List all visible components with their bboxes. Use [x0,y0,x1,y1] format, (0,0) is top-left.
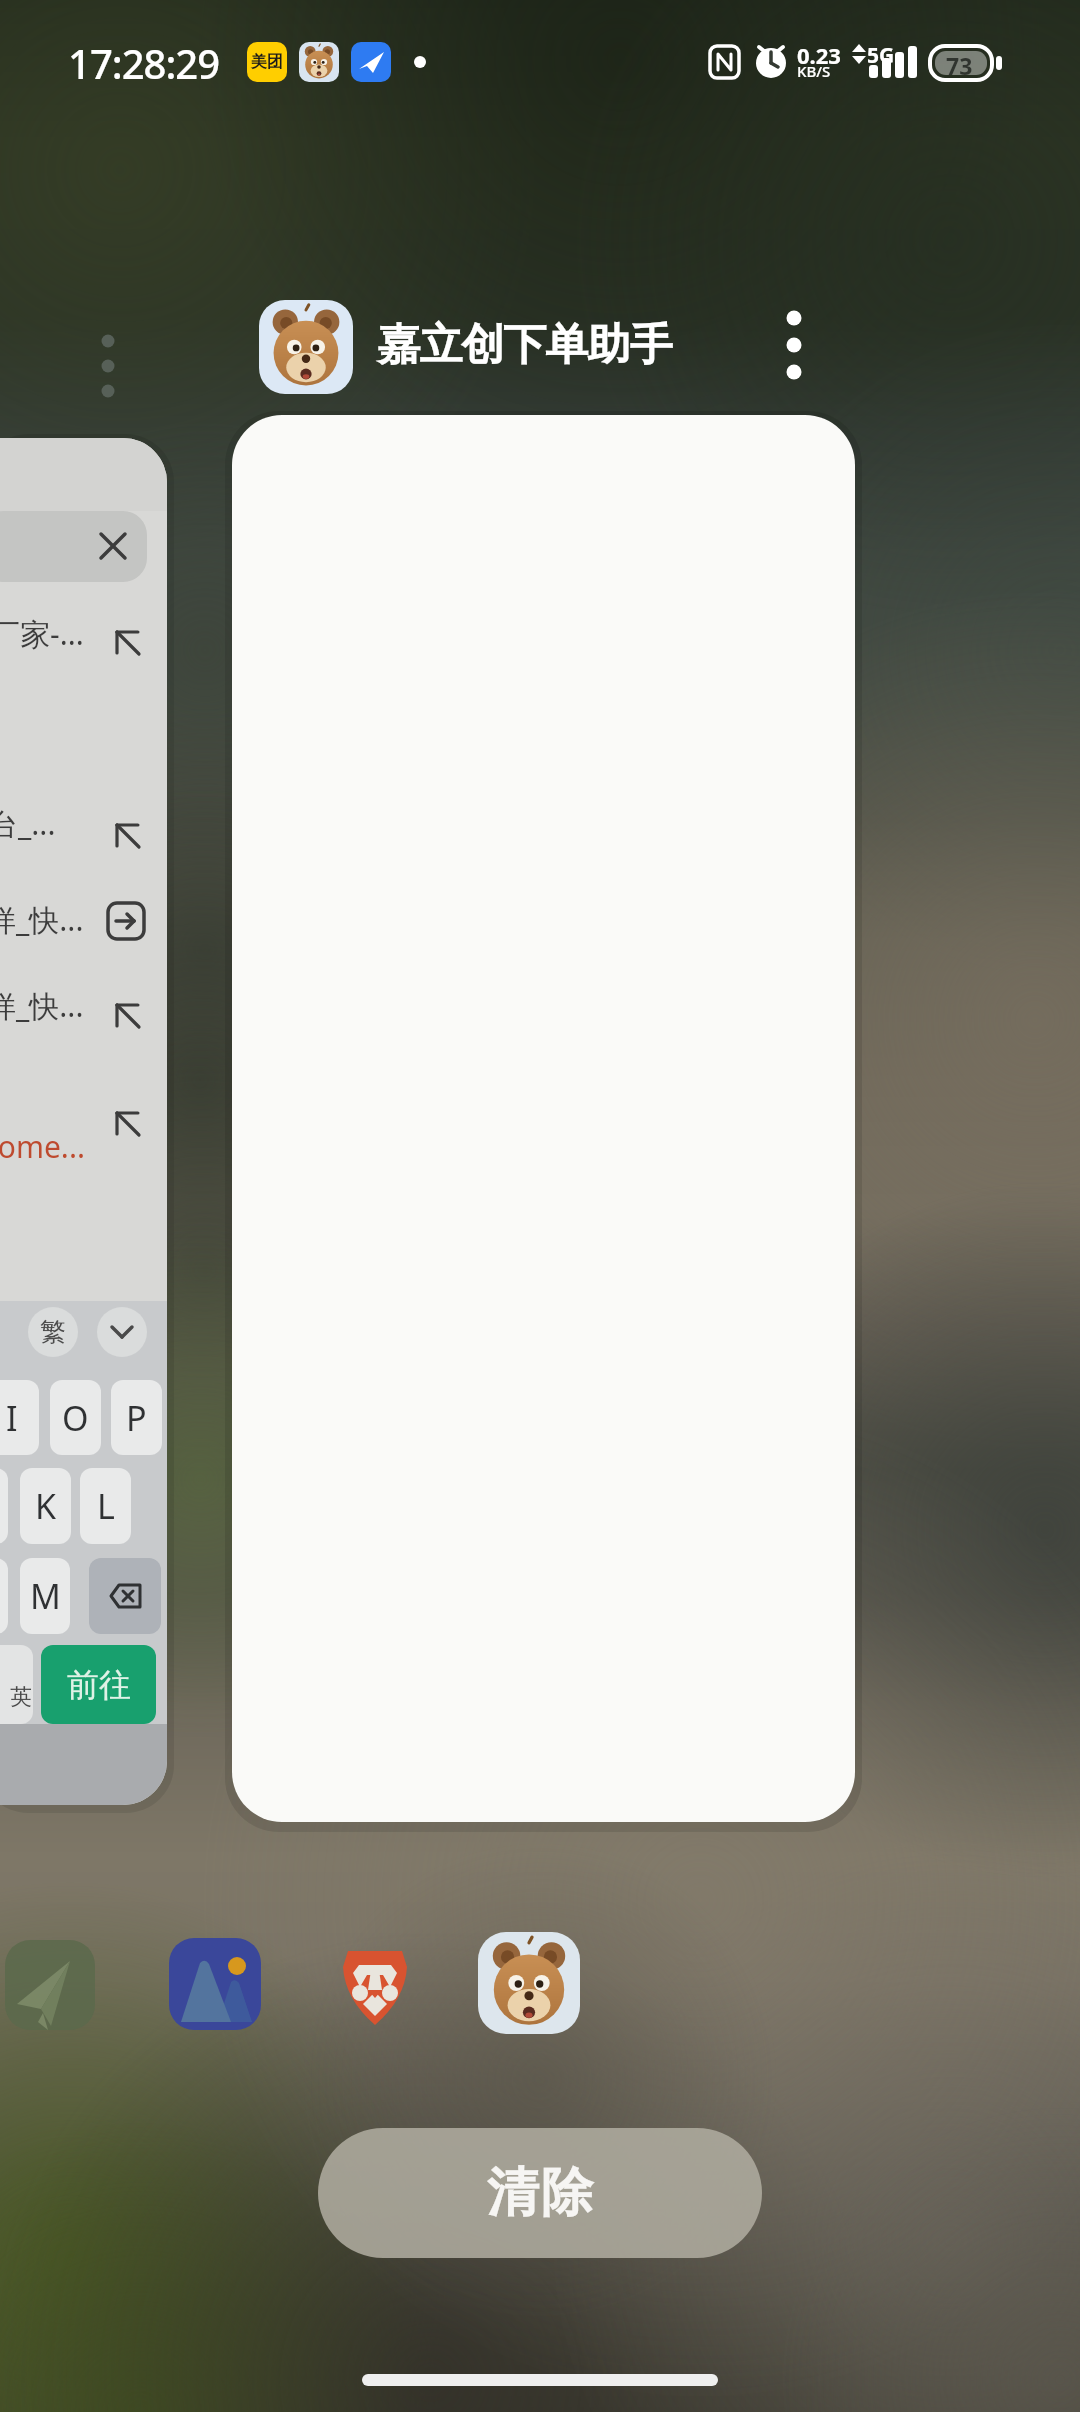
button[interactable] [478,1932,580,2034]
staticText: 英 [10,1683,32,1711]
staticText: 样_快... [0,899,84,940]
staticText: 清除 [486,2160,594,2226]
staticText: I [6,1395,18,1441]
staticText: 美团 [251,52,283,72]
button[interactable]: 清除 [318,2128,762,2258]
staticText: 台_... [0,803,56,844]
staticText: 繁 [40,1316,66,1349]
staticText: 嘉立创下单助手 [378,318,672,372]
staticText: 17:28:29 [68,36,220,90]
button[interactable] [169,1938,261,2030]
button[interactable] [259,300,353,394]
staticText: P [126,1395,147,1441]
staticText: L [97,1483,115,1529]
staticText: 前往 [67,1665,131,1705]
staticText: 厂家-... [0,613,84,654]
staticText: M [30,1573,61,1619]
staticText: 73 [946,50,973,81]
staticText: KB/S [797,61,831,81]
staticText: K [35,1483,57,1529]
staticText: 5G [867,41,895,70]
button[interactable]: 厂家-... [0,438,167,1805]
staticText: O [62,1395,89,1441]
staticText: 0.23 [797,40,841,70]
staticText: lome... [0,1126,85,1167]
staticText: 样_快... [0,985,84,1026]
button[interactable] [232,415,855,1822]
button[interactable] [338,1936,412,2030]
button[interactable] [5,1940,95,2030]
button[interactable] [770,302,818,392]
